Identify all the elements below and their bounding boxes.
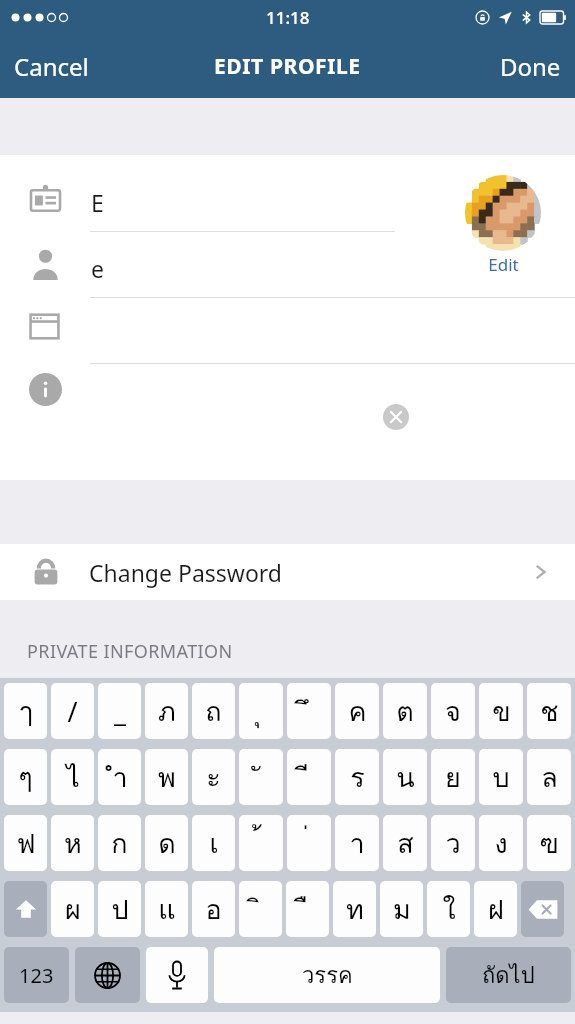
button[interactable]: ภ (145, 683, 188, 739)
button[interactable]: ่ (287, 815, 331, 871)
button[interactable]: ำ (98, 749, 141, 805)
button[interactable]: ถัดไป (446, 947, 571, 1003)
staticText: E (91, 187, 104, 218)
staticText: ฟ (16, 822, 36, 865)
staticText: ๆ (18, 756, 33, 799)
staticText: 11:18 (266, 6, 310, 29)
button[interactable]: ถ (192, 683, 235, 739)
button[interactable]: ง (479, 815, 523, 871)
button[interactable]: ข (479, 683, 523, 739)
button[interactable]: ฝ (474, 881, 517, 937)
button[interactable]: ล (527, 749, 571, 805)
staticText: ช (540, 690, 559, 733)
staticText: Change Password (89, 557, 282, 588)
button[interactable]: Shift (4, 881, 47, 937)
staticText: ฝ (488, 888, 504, 931)
staticText: Done (500, 50, 561, 83)
staticText: ถัดไป (482, 958, 535, 993)
button[interactable]: _ (98, 683, 141, 739)
button[interactable]: ด (145, 815, 188, 871)
button[interactable]: / (51, 683, 94, 739)
button[interactable]: Clear text (383, 404, 409, 430)
button[interactable]: ม (380, 881, 423, 937)
button[interactable]: ื (286, 881, 329, 937)
staticText: ะ (206, 756, 221, 799)
button[interactable]: เ (192, 815, 235, 871)
staticText: จ (445, 690, 461, 733)
button[interactable]: ๅ (4, 683, 47, 739)
button[interactable]: ี (287, 749, 331, 805)
button[interactable]: ิ (239, 881, 282, 937)
staticText: น (396, 756, 415, 799)
button[interactable]: Dictation (146, 947, 208, 1003)
staticText: อ (205, 888, 222, 931)
button[interactable]: ว (431, 815, 475, 871)
button[interactable]: Cancel (0, 40, 103, 93)
staticText: ค (348, 690, 367, 733)
staticText: า (349, 822, 365, 865)
staticText: e (91, 253, 104, 284)
staticText: ล (541, 756, 558, 799)
button[interactable]: Backspace (521, 881, 564, 937)
button[interactable]: ะ (192, 749, 235, 805)
button[interactable]: Switch language (75, 947, 140, 1003)
button[interactable]: ผ (51, 881, 94, 937)
button[interactable]: ท (333, 881, 376, 937)
staticText: PRIVATE INFORMATION (27, 639, 233, 664)
button[interactable]: Profile photo (465, 175, 541, 251)
button[interactable]: ไ (51, 749, 94, 805)
staticText: ห (64, 822, 82, 865)
button[interactable]: 123 (4, 947, 69, 1003)
staticText: EDIT PROFILE (214, 52, 361, 81)
staticText: 123 (19, 962, 54, 989)
button[interactable]: ๆ (4, 749, 47, 805)
button[interactable]: ก (98, 815, 141, 871)
button[interactable]: ุ (239, 683, 283, 739)
button[interactable]: Done (486, 40, 575, 93)
staticText: บ (492, 756, 510, 799)
staticText: แ (158, 888, 176, 931)
button[interactable]: า (335, 815, 379, 871)
button[interactable]: วรรค (214, 947, 440, 1003)
staticText: _ (114, 693, 126, 730)
button[interactable]: ย (431, 749, 475, 805)
button[interactable]: ค (335, 683, 379, 739)
staticText: ว (445, 822, 461, 865)
staticText: ผ (65, 888, 81, 931)
button[interactable]: ึ (287, 683, 331, 739)
button[interactable]: ฟ (4, 815, 47, 871)
button[interactable]: จ (431, 683, 475, 739)
staticText: ำ (112, 756, 128, 799)
staticText: ก (111, 822, 128, 865)
button[interactable]: ฃ (527, 815, 571, 871)
button[interactable]: ป (98, 881, 141, 937)
staticText: ส (397, 822, 414, 865)
staticText: ภ (158, 690, 176, 733)
button[interactable]: ั (239, 749, 283, 805)
staticText: เ (209, 822, 219, 865)
button[interactable]: ้ (239, 815, 283, 871)
staticText: พ (158, 756, 176, 799)
staticText: ด (158, 822, 176, 865)
staticText: ง (494, 822, 508, 865)
button[interactable]: ห (51, 815, 94, 871)
button[interactable]: บ (479, 749, 523, 805)
staticText: ข (492, 690, 511, 733)
staticText: ท (346, 888, 364, 931)
staticText: ย (445, 756, 461, 799)
button[interactable]: น (383, 749, 427, 805)
button[interactable]: อ (192, 881, 235, 937)
button[interactable]: Change Password (0, 544, 575, 600)
button[interactable]: ช (527, 683, 571, 739)
staticText: ต (396, 690, 414, 733)
button[interactable]: แ (145, 881, 188, 937)
button[interactable]: ต (383, 683, 427, 739)
staticText: ไ (66, 756, 80, 799)
button[interactable]: ส (383, 815, 427, 871)
button[interactable]: ร (335, 749, 379, 805)
button[interactable]: ใ (427, 881, 470, 937)
staticText: / (67, 693, 78, 730)
button[interactable]: พ (145, 749, 188, 805)
button[interactable]: Edit (465, 253, 541, 276)
staticText: ม (393, 888, 411, 931)
